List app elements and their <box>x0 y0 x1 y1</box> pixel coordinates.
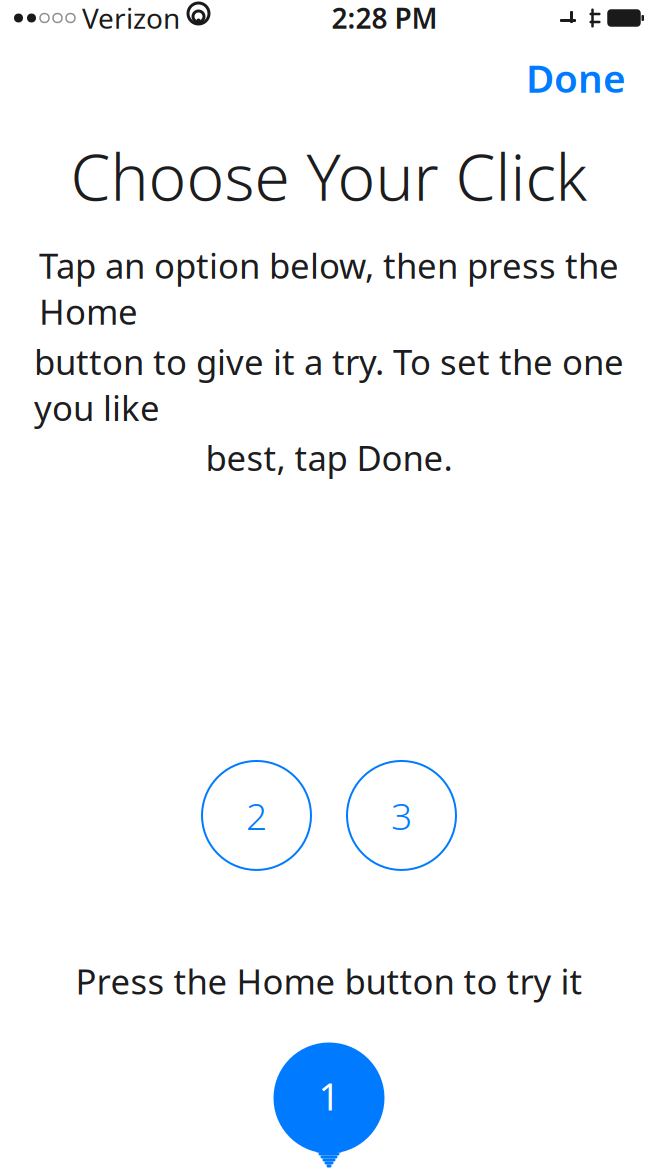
staticText: 2 <box>246 791 267 840</box>
staticText: button to give it a try. To set the one … <box>34 338 624 430</box>
button[interactable]: Done <box>510 44 642 111</box>
staticText: Verizon <box>82 0 180 37</box>
staticText: 1 <box>318 1071 339 1121</box>
staticText: 2:28 PM <box>331 0 437 37</box>
staticText: best, tap Done. <box>205 434 452 480</box>
staticText: Press the Home button to try it <box>75 958 582 1004</box>
staticText: Tap an option below, then press the Home <box>39 242 619 334</box>
button[interactable]: 1 <box>273 1040 384 1170</box>
button[interactable]: 3 <box>347 761 456 870</box>
staticText: Done <box>526 52 626 103</box>
button[interactable]: 2 <box>202 761 311 870</box>
staticText: Choose Your Click <box>70 133 587 218</box>
staticText: 3 <box>391 791 412 840</box>
